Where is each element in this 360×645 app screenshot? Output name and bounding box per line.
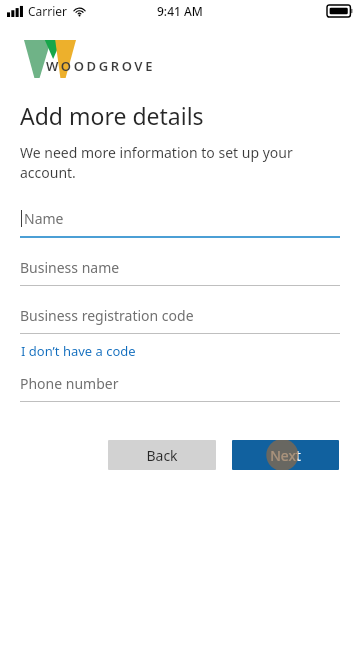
- button[interactable]: I don’t have a code: [20, 340, 137, 362]
- staticText: Add more details: [20, 100, 204, 131]
- button[interactable]: Business name: [20, 256, 340, 286]
- staticText: We need more information to set up your …: [20, 143, 293, 183]
- staticText: Next: [270, 446, 301, 465]
- button[interactable]: Phone number: [20, 372, 340, 402]
- staticText: Back: [146, 446, 178, 465]
- staticText: Business registration code: [20, 306, 194, 325]
- button[interactable]: Next: [232, 440, 339, 470]
- staticText: WOODGROVE: [46, 57, 155, 75]
- staticText: Business name: [20, 258, 120, 277]
- staticText: I don’t have a code: [21, 342, 136, 360]
- staticText: Phone number: [20, 374, 119, 393]
- staticText: Carrier: [28, 3, 68, 19]
- staticText: 9:41 AM: [157, 3, 203, 19]
- button[interactable]: Business registration code: [20, 304, 340, 334]
- button[interactable]: Name: [20, 207, 340, 238]
- button[interactable]: Back: [108, 440, 216, 470]
- staticText: Name: [24, 209, 64, 228]
